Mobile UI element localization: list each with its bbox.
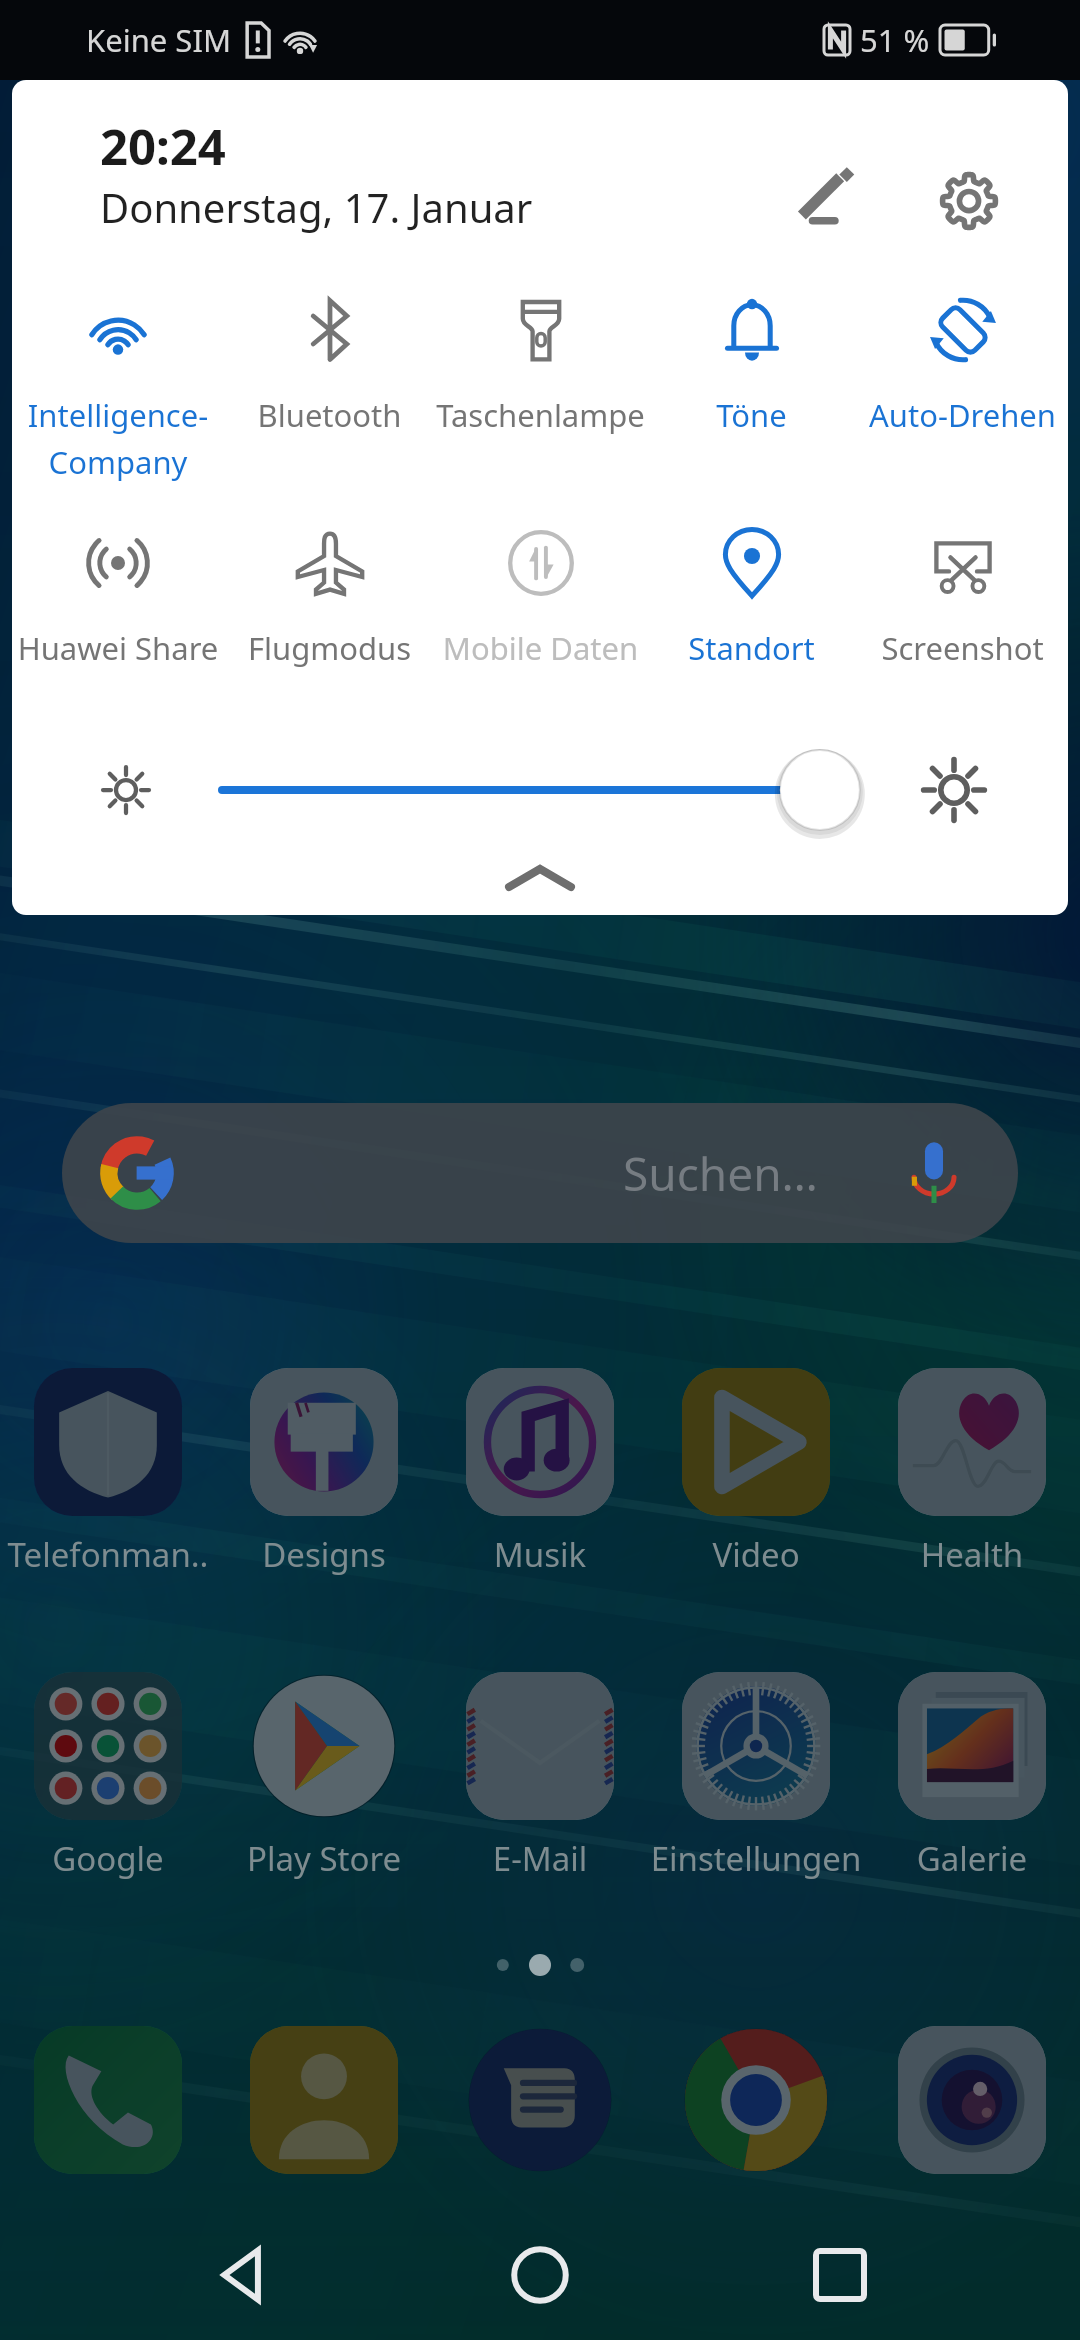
button[interactable]: Kontakte bbox=[216, 2026, 432, 2174]
button[interactable]: Bearbeiten bbox=[754, 128, 900, 274]
staticText: Auto-Drehen bbox=[857, 394, 1068, 436]
button[interactable]: Play Store bbox=[216, 1672, 432, 1881]
staticText: Taschenlampe bbox=[435, 394, 646, 436]
button[interactable]: Auto-Drehen bbox=[857, 266, 1068, 496]
button[interactable]: Musik bbox=[432, 1368, 648, 1577]
button[interactable]: Taschenlampe bbox=[435, 266, 646, 496]
button[interactable]: Health bbox=[864, 1368, 1080, 1577]
button[interactable]: Einstellungen bbox=[648, 1672, 864, 1881]
button[interactable]: Helligkeit bbox=[222, 740, 858, 840]
staticText: Video bbox=[648, 1532, 864, 1577]
button[interactable]: Helligkeit erhöhen bbox=[912, 748, 996, 832]
button[interactable]: Video bbox=[648, 1368, 864, 1577]
staticText: Donnerstag, 17. Januar bbox=[100, 180, 533, 234]
button[interactable]: Google bbox=[0, 1672, 216, 1881]
button[interactable]: E-Mail bbox=[432, 1672, 648, 1881]
button[interactable]: Telefon bbox=[0, 2026, 216, 2174]
staticText: Designs bbox=[216, 1532, 432, 1577]
button[interactable]: Intelligence- Company bbox=[12, 266, 224, 496]
staticText: Galerie bbox=[864, 1836, 1080, 1881]
button[interactable]: Chrome bbox=[648, 2026, 864, 2174]
button[interactable]: Übersicht bbox=[780, 2215, 900, 2335]
staticText: Google bbox=[0, 1836, 216, 1881]
staticText: Suchen… bbox=[623, 1142, 818, 1205]
staticText: Telefonman.. bbox=[0, 1532, 216, 1577]
button[interactable]: Einklappen bbox=[12, 840, 1068, 915]
button[interactable]: Screenshot bbox=[857, 499, 1068, 729]
staticText: Standort bbox=[646, 627, 857, 669]
staticText: Health bbox=[864, 1532, 1080, 1577]
staticText: 20:24 bbox=[100, 113, 226, 180]
button[interactable]: Startbildschirm bbox=[480, 2215, 600, 2335]
staticText: Play Store bbox=[216, 1836, 432, 1881]
button[interactable]: Galerie bbox=[864, 1672, 1080, 1881]
staticText: Screenshot bbox=[857, 627, 1068, 669]
staticText: Intelligence- Company bbox=[12, 394, 224, 483]
staticText: Töne bbox=[646, 394, 857, 436]
button[interactable]: Flugmodus bbox=[224, 499, 435, 729]
button[interactable]: Huawei Share bbox=[12, 499, 224, 729]
button[interactable]: Google Suche bbox=[62, 1103, 1018, 1243]
staticText: E-Mail bbox=[432, 1836, 648, 1881]
button[interactable]: Töne bbox=[646, 266, 857, 496]
button[interactable]: Nachrichten bbox=[432, 2026, 648, 2174]
button[interactable]: Zurück bbox=[180, 2215, 300, 2335]
button[interactable]: Bluetooth bbox=[224, 266, 435, 496]
staticText: Huawei Share bbox=[12, 627, 224, 669]
staticText: Keine SIM bbox=[86, 19, 232, 61]
button[interactable]: Standort bbox=[646, 499, 857, 729]
staticText: Einstellungen bbox=[648, 1836, 864, 1881]
staticText: Bluetooth bbox=[224, 394, 435, 436]
staticText: Mobile Daten bbox=[435, 627, 646, 669]
button[interactable]: Einstellungen bbox=[896, 128, 1042, 274]
staticText: Flugmodus bbox=[224, 627, 435, 669]
button[interactable]: Designs bbox=[216, 1368, 432, 1577]
button[interactable]: Telefonman.. bbox=[0, 1368, 216, 1577]
staticText: 51 % bbox=[860, 19, 930, 61]
button[interactable]: Kamera bbox=[864, 2026, 1080, 2174]
staticText: Musik bbox=[432, 1532, 648, 1577]
button[interactable]: Helligkeit verringern bbox=[84, 748, 168, 832]
button[interactable]: Mobile Daten bbox=[435, 499, 646, 729]
